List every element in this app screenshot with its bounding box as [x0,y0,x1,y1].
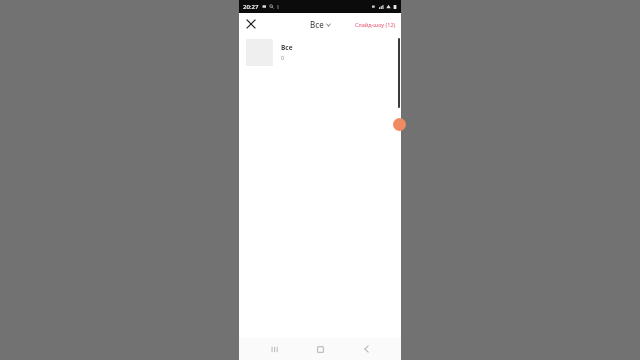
staticText: 20:27 [243,3,259,11]
staticText: Слайд-шоу (12) [355,21,396,28]
staticText: 0 [281,54,285,61]
button[interactable]: Закрыть [243,16,259,32]
button[interactable]: Назад [355,338,377,360]
button[interactable]: Последние приложения [263,338,285,360]
staticText: Все [310,19,324,30]
staticText: Все [281,43,293,52]
button[interactable]: Действие [393,118,406,131]
button[interactable]: Все [239,35,401,69]
button[interactable]: Главный экран [309,338,331,360]
button[interactable]: Все [306,17,335,32]
button[interactable]: Слайд-шоу (12) [350,18,401,31]
